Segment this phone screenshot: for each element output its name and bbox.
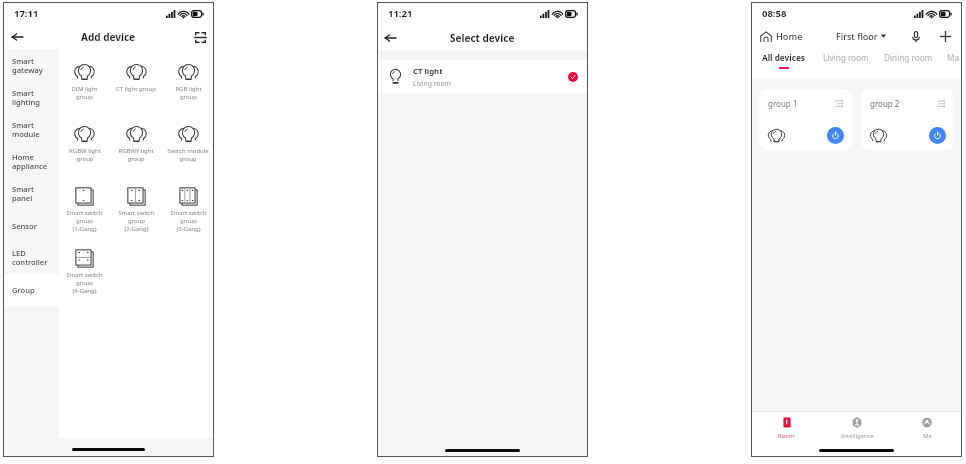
- button[interactable]: RGBW light group: [59, 117, 110, 179]
- button[interactable]: Smart module: [3, 114, 59, 146]
- staticText: Ma: [947, 52, 960, 63]
- button[interactable]: Dining room: [884, 47, 933, 79]
- staticText: Room: [778, 432, 795, 440]
- staticText: Sensor: [12, 221, 37, 231]
- staticText: CT light: [413, 66, 443, 77]
- staticText: All devices: [762, 52, 805, 63]
- button[interactable]: Back: [382, 29, 399, 46]
- button[interactable]: Voice search: [907, 27, 925, 45]
- staticText: group 1: [768, 98, 798, 109]
- staticText: Smart switch group (2-Gang): [118, 209, 155, 233]
- button[interactable]: Selected: [568, 72, 578, 82]
- button[interactable]: Ma: [947, 47, 960, 79]
- staticText: DIM light group: [71, 85, 98, 101]
- button[interactable]: CT light group: [110, 55, 162, 117]
- staticText: Smart lighting: [12, 88, 40, 108]
- button[interactable]: Smart gateway: [3, 50, 59, 82]
- button[interactable]: DIM light group: [59, 55, 110, 117]
- button[interactable]: Smart switch group (4-Gang): [59, 241, 110, 303]
- button[interactable]: Add device: [936, 27, 954, 45]
- staticText: Smart switch group (1-Gang): [66, 209, 103, 233]
- staticText: LED controller: [12, 248, 48, 268]
- staticText: First floor: [836, 30, 878, 42]
- staticText: Smart switch group (4-Gang): [66, 271, 103, 295]
- button[interactable]: Smart lighting: [3, 82, 59, 114]
- button[interactable]: Smart panel: [3, 178, 59, 210]
- staticText: Smart switch group (3-Gang): [170, 209, 207, 233]
- staticText: Select device: [450, 31, 515, 45]
- staticText: Home appliance: [12, 152, 48, 172]
- staticText: Living room: [823, 52, 869, 63]
- button[interactable]: Smart switch group (1-Gang): [59, 179, 110, 241]
- staticText: RGBW light group: [69, 147, 101, 163]
- staticText: Dining room: [884, 52, 933, 63]
- staticText: Group: [12, 285, 35, 295]
- staticText: 17:11: [14, 7, 39, 20]
- staticText: Living room: [413, 79, 451, 88]
- button[interactable]: Power toggle: [929, 127, 946, 144]
- staticText: Add device: [81, 30, 136, 44]
- staticText: Smart module: [12, 120, 40, 140]
- button[interactable]: group 1: [759, 89, 852, 150]
- button[interactable]: Home appliance: [3, 146, 59, 178]
- button[interactable]: Me: [892, 412, 962, 444]
- button[interactable]: Group: [3, 274, 59, 306]
- button[interactable]: Power toggle: [827, 127, 844, 144]
- button[interactable]: Living room: [823, 47, 869, 79]
- staticText: Intelligence: [841, 432, 874, 440]
- staticText: CT light group: [116, 85, 156, 93]
- staticText: RGBWY light group: [118, 147, 154, 163]
- button[interactable]: Smart switch group (2-Gang): [110, 179, 162, 241]
- staticText: RGB light group: [175, 85, 202, 101]
- button[interactable]: First floor: [833, 28, 889, 44]
- button[interactable]: Scan: [192, 29, 208, 45]
- button[interactable]: RGB light group: [162, 55, 214, 117]
- button[interactable]: Back: [9, 29, 25, 45]
- staticText: Smart gateway: [12, 56, 43, 76]
- staticText: Smart panel: [12, 184, 34, 204]
- button[interactable]: Room: [751, 412, 822, 444]
- staticText: Switch module group: [167, 147, 209, 163]
- button[interactable]: LED controller: [3, 242, 59, 274]
- staticText: 11:21: [388, 7, 413, 20]
- button[interactable]: CT light: [377, 60, 588, 93]
- button[interactable]: group 2: [861, 89, 954, 150]
- button[interactable]: Intelligence: [822, 412, 892, 444]
- button[interactable]: All devices: [762, 47, 805, 79]
- staticText: group 2: [870, 98, 900, 109]
- staticText: 08:58: [762, 7, 787, 20]
- button[interactable]: Home: [757, 28, 806, 45]
- button[interactable]: Smart switch group (3-Gang): [162, 179, 214, 241]
- button[interactable]: RGBWY light group: [110, 117, 162, 179]
- staticText: Home: [776, 30, 803, 43]
- button[interactable]: Sensor: [3, 210, 59, 242]
- button[interactable]: Switch module group: [162, 117, 214, 179]
- staticText: Me: [923, 432, 932, 440]
